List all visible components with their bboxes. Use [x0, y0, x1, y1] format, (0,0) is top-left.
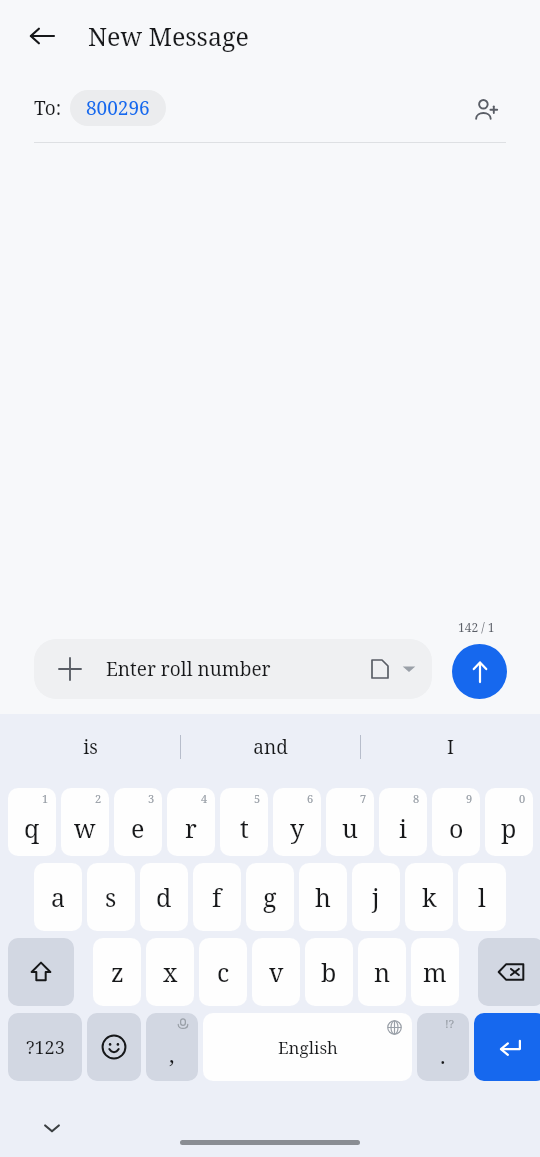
button[interactable]: 800296	[70, 90, 166, 126]
staticText: p	[501, 811, 517, 845]
button[interactable]: n	[358, 938, 406, 1006]
button[interactable]: 1	[8, 788, 56, 856]
staticText: 3	[148, 791, 155, 806]
button[interactable]: English	[203, 1013, 412, 1081]
button[interactable]: 5	[220, 788, 268, 856]
button[interactable]: 8	[379, 788, 427, 856]
staticText: z	[111, 955, 124, 989]
button[interactable]: Enter roll number	[34, 639, 432, 699]
button[interactable]: 0	[485, 788, 533, 856]
button[interactable]: and	[181, 714, 360, 780]
staticText: o	[449, 811, 464, 845]
button[interactable]: ,	[146, 1013, 198, 1081]
button[interactable]: x	[146, 938, 194, 1006]
staticText: I	[447, 734, 454, 760]
button[interactable]: Send	[452, 644, 507, 699]
staticText: x	[163, 955, 178, 989]
button[interactable]: m	[411, 938, 459, 1006]
staticText: l	[478, 880, 486, 914]
staticText: v	[269, 955, 284, 989]
button[interactable]: I	[361, 714, 540, 780]
staticText: ?123	[26, 1035, 65, 1060]
button[interactable]: Enter	[474, 1013, 540, 1081]
staticText: 1	[42, 791, 49, 806]
staticText: 8	[413, 791, 420, 806]
button[interactable]: 9	[432, 788, 480, 856]
button[interactable]: v	[252, 938, 300, 1006]
staticText: m	[423, 955, 447, 989]
button[interactable]: h	[299, 863, 347, 931]
staticText: 142 / 1	[458, 619, 495, 635]
staticText: 800296	[86, 95, 150, 121]
staticText: .	[440, 1040, 446, 1070]
button[interactable]: Emoji	[87, 1013, 141, 1081]
button[interactable]: Add contact	[462, 86, 510, 134]
staticText: w	[74, 811, 96, 845]
staticText: To:	[34, 95, 62, 121]
staticText: e	[131, 811, 145, 845]
button[interactable]: 2	[61, 788, 109, 856]
staticText: a	[51, 880, 66, 914]
staticText: 9	[466, 791, 473, 806]
staticText: f	[212, 880, 222, 914]
staticText: !?	[445, 1016, 454, 1031]
staticText: k	[422, 880, 437, 914]
button[interactable]: k	[405, 863, 453, 931]
staticText: 0	[519, 791, 526, 806]
staticText: English	[278, 1036, 338, 1059]
staticText: ,	[169, 1039, 175, 1069]
button[interactable]: a	[34, 863, 82, 931]
staticText: Enter roll number	[106, 656, 271, 682]
button[interactable]: Shift	[8, 938, 74, 1006]
button[interactable]: ?123	[8, 1013, 82, 1081]
button[interactable]: j	[352, 863, 400, 931]
staticText: 5	[254, 791, 261, 806]
staticText: n	[374, 955, 391, 989]
staticText: h	[315, 880, 331, 914]
button[interactable]: b	[305, 938, 353, 1006]
staticText: b	[321, 955, 337, 989]
staticText: New Message	[88, 19, 249, 53]
staticText: q	[24, 811, 40, 845]
staticText: d	[156, 880, 172, 914]
button[interactable]: 3	[114, 788, 162, 856]
button[interactable]: c	[199, 938, 247, 1006]
staticText: i	[399, 811, 408, 845]
button[interactable]: !?	[417, 1013, 469, 1081]
staticText: 7	[360, 791, 367, 806]
button[interactable]: 6	[273, 788, 321, 856]
staticText: 4	[201, 791, 208, 806]
button[interactable]: Backspace	[478, 938, 540, 1006]
staticText: g	[263, 880, 277, 914]
staticText: s	[105, 880, 117, 914]
staticText: is	[83, 734, 98, 760]
button[interactable]: s	[87, 863, 135, 931]
button[interactable]: d	[140, 863, 188, 931]
staticText: and	[253, 734, 288, 760]
button[interactable]: f	[193, 863, 241, 931]
staticText: t	[240, 811, 249, 845]
button[interactable]: z	[93, 938, 141, 1006]
staticText: u	[342, 811, 358, 845]
staticText: y	[290, 811, 305, 845]
staticText: 2	[95, 791, 102, 806]
staticText: r	[185, 811, 197, 845]
button[interactable]: l	[458, 863, 506, 931]
button[interactable]: g	[246, 863, 294, 931]
staticText: c	[217, 955, 230, 989]
staticText: j	[372, 880, 380, 914]
button[interactable]: 7	[326, 788, 374, 856]
button[interactable]: Back	[18, 12, 66, 60]
button[interactable]: is	[0, 714, 180, 780]
button[interactable]: 4	[167, 788, 215, 856]
staticText: 6	[307, 791, 314, 806]
button[interactable]: Hide keyboard	[30, 1106, 74, 1150]
